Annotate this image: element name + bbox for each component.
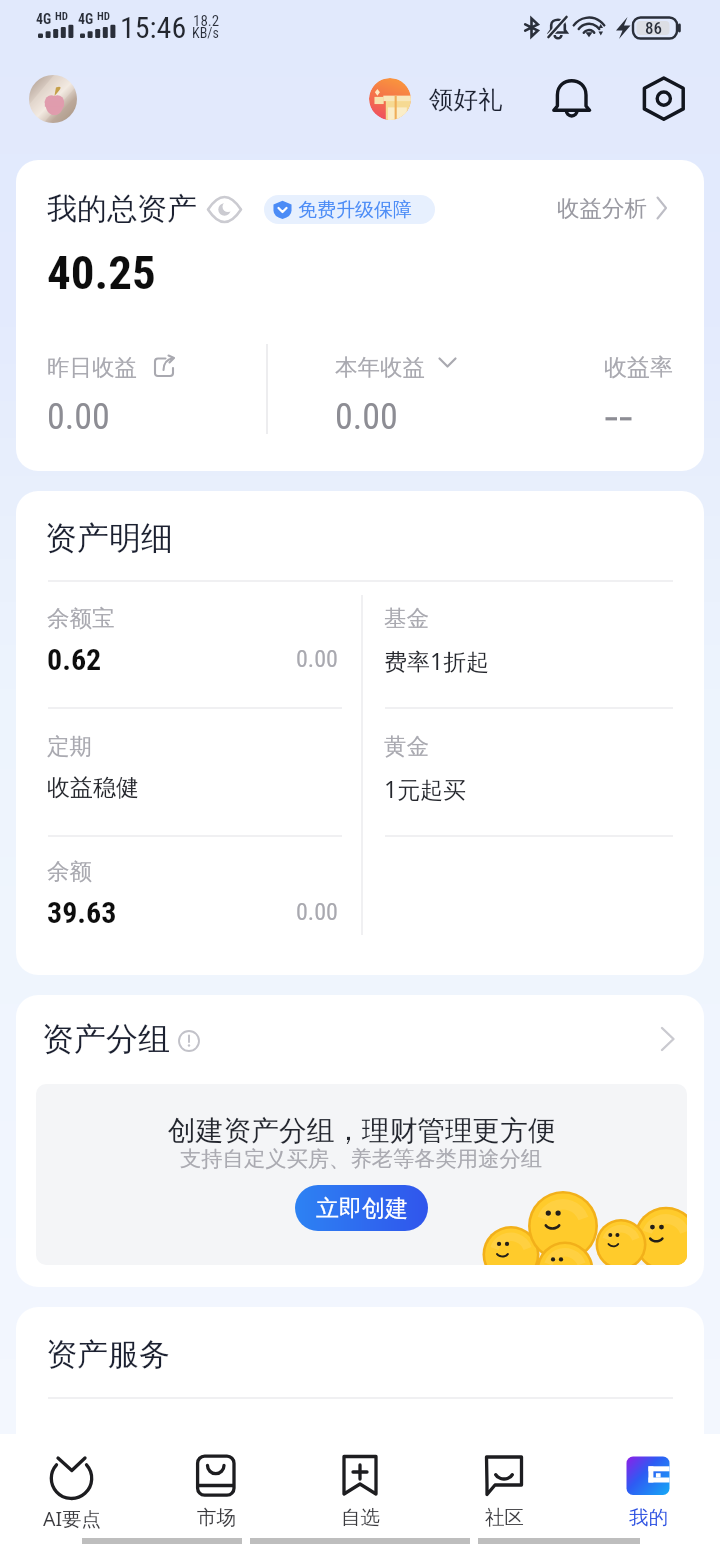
button[interactable]: Notifications	[550, 72, 598, 120]
staticText: 39.63	[47, 895, 117, 930]
staticText: 0.00	[335, 396, 398, 438]
button[interactable]: Settings	[641, 76, 687, 122]
button[interactable]: AI要点	[0, 1434, 144, 1538]
staticText: 领好礼	[429, 84, 503, 115]
staticText: 4G	[36, 11, 52, 27]
staticText: 资产分组	[42, 1019, 170, 1059]
button[interactable]: 领好礼	[369, 77, 503, 121]
button[interactable]: 立即创建	[295, 1185, 428, 1231]
staticText: AI要点	[43, 1505, 102, 1532]
button[interactable]: Profile	[29, 75, 77, 123]
staticText: 收益率	[604, 353, 673, 382]
staticText: 0.62	[47, 642, 102, 677]
button[interactable]: 免费升级保障	[264, 195, 435, 224]
button[interactable]: 收益分析	[557, 194, 668, 222]
staticText: 0.00	[47, 396, 110, 438]
staticText: 立即创建	[316, 1194, 408, 1223]
button[interactable]: 社区	[432, 1434, 576, 1538]
staticText: 4G	[78, 11, 94, 27]
staticText: 免费升级保障	[298, 198, 412, 222]
staticText: 费率1折起	[384, 645, 490, 676]
staticText: 86	[645, 18, 662, 38]
staticText: 基金	[384, 604, 429, 632]
staticText: 余额	[47, 857, 92, 885]
button[interactable]: 定期	[47, 732, 341, 827]
button[interactable]: Share	[152, 354, 176, 378]
button[interactable]: 余额	[47, 857, 341, 952]
staticText: 创建资产分组，理财管理更方便	[168, 1113, 556, 1148]
staticText: 余额宝	[47, 604, 115, 632]
staticText: 0.00	[296, 645, 338, 673]
staticText: 15:46	[120, 10, 187, 45]
button[interactable]: 基金	[384, 604, 672, 699]
button[interactable]: 黄金	[384, 732, 672, 827]
button[interactable]: 余额宝	[47, 604, 341, 699]
staticText: 40.25	[47, 245, 156, 300]
button[interactable]: 自选	[288, 1434, 432, 1538]
staticText: KB/s	[192, 25, 219, 41]
staticText: 收益稳健	[47, 773, 139, 802]
staticText: 昨日收益	[47, 353, 137, 381]
staticText: HD	[55, 10, 68, 23]
staticText: 资产服务	[46, 1335, 170, 1374]
staticText: 本年收益	[335, 353, 425, 381]
staticText: 1元起买	[384, 773, 467, 804]
button[interactable]: Hide amount	[206, 191, 242, 227]
staticText: 市场	[197, 1505, 236, 1530]
staticText: 社区	[485, 1505, 524, 1530]
staticText: 我的总资产	[47, 190, 197, 228]
staticText: 自选	[341, 1505, 380, 1530]
staticText: 支持自定义买房、养老等各类用途分组	[180, 1145, 543, 1172]
button[interactable]: Information	[171, 1023, 207, 1059]
staticText: 0.00	[296, 898, 338, 926]
staticText: 我的	[629, 1505, 668, 1530]
button[interactable]: Open asset groups	[656, 1023, 690, 1057]
staticText: 黄金	[384, 732, 429, 760]
staticText: 18.2	[193, 12, 220, 30]
button[interactable]: 市场	[144, 1434, 288, 1538]
staticText: 定期	[47, 732, 92, 760]
button[interactable]: 我的	[576, 1434, 720, 1538]
staticText: 收益分析	[557, 194, 647, 222]
staticText: HD	[97, 10, 110, 23]
staticText: 资产明细	[45, 518, 173, 558]
